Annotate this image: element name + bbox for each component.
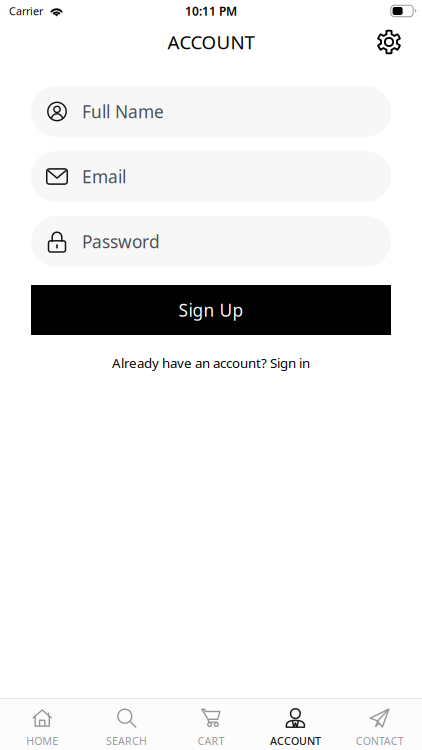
- staticText: CONTACT: [356, 734, 404, 748]
- staticText: SEARCH: [106, 734, 147, 748]
- button[interactable]: ACCOUNT: [253, 699, 338, 750]
- button[interactable]: Password: [31, 216, 391, 267]
- staticText: 10:11 PM: [185, 3, 237, 19]
- button[interactable]: CART: [169, 699, 253, 750]
- staticText: ACCOUNT: [270, 734, 321, 748]
- button[interactable]: Sign Up: [31, 285, 391, 335]
- staticText: HOME: [26, 734, 58, 748]
- staticText: Password: [82, 230, 160, 253]
- button[interactable]: Email: [31, 151, 391, 202]
- staticText: Carrier: [9, 4, 43, 18]
- staticText: Sign Up: [178, 298, 243, 321]
- button[interactable]: CONTACT: [338, 699, 422, 750]
- staticText: Already have an account? Sign in: [112, 354, 310, 372]
- button[interactable]: SEARCH: [84, 699, 169, 750]
- button[interactable]: Settings: [370, 23, 408, 61]
- staticText: Email: [82, 165, 126, 188]
- button[interactable]: HOME: [0, 699, 84, 750]
- button[interactable]: Already have an account? Sign in: [102, 335, 320, 372]
- staticText: ACCOUNT: [167, 30, 254, 54]
- staticText: Full Name: [82, 100, 164, 123]
- staticText: CART: [197, 734, 224, 748]
- button[interactable]: Full Name: [31, 86, 391, 137]
